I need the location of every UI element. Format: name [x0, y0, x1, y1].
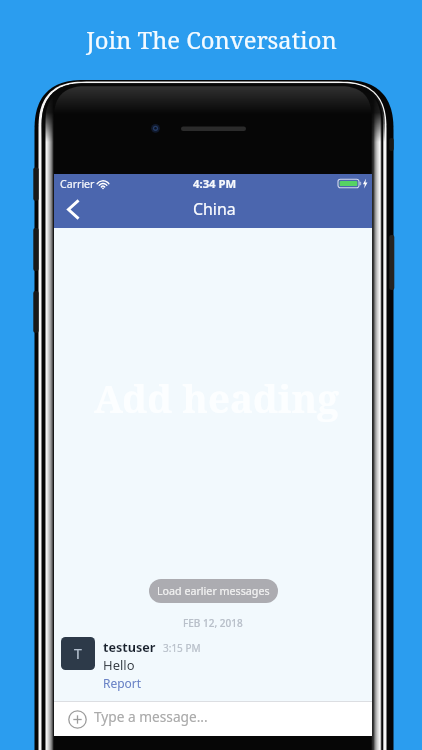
staticText: Carrier	[60, 177, 95, 191]
staticText: 4:34 PM	[193, 176, 237, 191]
staticText: China	[193, 198, 236, 220]
button[interactable]: Load earlier messages	[149, 579, 278, 603]
staticText: 3:15 PM	[163, 641, 201, 655]
staticText: FEB 12, 2018	[183, 616, 243, 630]
staticText: Load earlier messages	[157, 584, 270, 599]
staticText: testuser	[103, 639, 156, 656]
button[interactable]: Back	[54, 194, 92, 228]
staticText: Add heading	[94, 372, 339, 424]
staticText: T	[74, 644, 82, 663]
button[interactable]: Add attachment	[68, 710, 87, 729]
button[interactable]: Report	[103, 675, 142, 691]
staticText: Type a message...	[94, 707, 208, 726]
staticText: Join The Conversation	[86, 24, 337, 56]
staticText: Hello	[103, 656, 135, 674]
